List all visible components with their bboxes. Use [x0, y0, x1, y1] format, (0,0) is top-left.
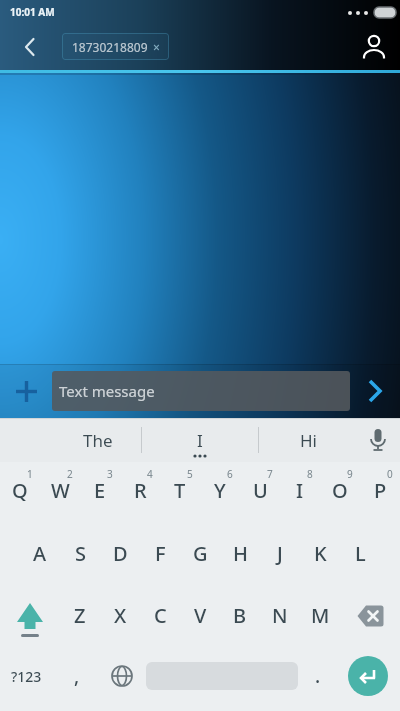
staticText: . [315, 663, 321, 689]
staticText: 5 [187, 467, 193, 481]
button[interactable] [354, 28, 392, 66]
button[interactable]: M [300, 587, 340, 649]
staticText: , [74, 663, 80, 689]
button[interactable]: 18730218809 [62, 33, 169, 60]
staticText: D [113, 540, 128, 567]
staticText: R [134, 477, 147, 504]
button[interactable]: B [220, 587, 260, 649]
staticText: T [174, 477, 186, 504]
staticText: H [233, 540, 248, 567]
staticText: S [75, 540, 86, 567]
button[interactable]: Y [200, 462, 240, 525]
staticText: Y [214, 477, 226, 504]
button[interactable]: I [280, 462, 320, 525]
button[interactable]: N [260, 587, 300, 649]
button[interactable]: D [100, 525, 140, 587]
staticText: 18730218809 [72, 39, 148, 55]
button[interactable]: X [100, 587, 140, 649]
staticText: I [197, 429, 203, 452]
button[interactable]: Hi [259, 418, 357, 462]
button[interactable]: L [340, 525, 380, 587]
button[interactable]: I [142, 418, 258, 462]
staticText: 9 [347, 467, 353, 481]
button[interactable]: , [52, 645, 102, 707]
staticText: K [314, 540, 327, 567]
button[interactable]: S [60, 525, 100, 587]
button[interactable] [0, 364, 52, 418]
button[interactable]: Q [0, 462, 40, 525]
button[interactable]: F [140, 525, 180, 587]
staticText: W [51, 477, 70, 504]
button[interactable]: G [180, 525, 220, 587]
staticText: N [272, 602, 288, 629]
staticText: 7 [267, 467, 273, 481]
staticText: Text message [59, 381, 155, 401]
staticText: 1 [27, 467, 33, 481]
staticText: J [277, 540, 283, 567]
button[interactable] [350, 364, 400, 418]
button[interactable]: E [80, 462, 120, 525]
button[interactable] [356, 418, 400, 462]
staticText: Hi [300, 429, 317, 452]
button[interactable]: Text message [52, 371, 350, 411]
button[interactable]: V [180, 587, 220, 649]
button[interactable]: J [260, 525, 300, 587]
staticText: U [253, 477, 268, 504]
staticText: X [114, 602, 127, 629]
staticText: M [311, 602, 330, 629]
staticText: E [94, 477, 106, 504]
staticText: V [194, 602, 207, 629]
staticText: B [233, 602, 247, 629]
staticText: Q [12, 477, 28, 504]
staticText: Z [74, 602, 86, 629]
button[interactable]: K [300, 525, 340, 587]
button[interactable]: The [48, 418, 148, 462]
button[interactable]: R [120, 462, 160, 525]
button[interactable]: C [140, 587, 180, 649]
button[interactable]: P [360, 462, 400, 525]
staticText: 8 [307, 467, 313, 481]
staticText: F [155, 540, 166, 567]
staticText: 6 [227, 467, 233, 481]
button[interactable]: Z [60, 587, 100, 649]
button[interactable]: . [300, 645, 336, 707]
staticText: L [355, 540, 366, 567]
button[interactable] [336, 645, 400, 707]
staticText: I [296, 477, 304, 504]
staticText: ?123 [11, 667, 42, 686]
staticText: P [374, 477, 387, 504]
staticText: 0 [387, 467, 393, 481]
button[interactable]: O [320, 462, 360, 525]
button[interactable]: A [20, 525, 60, 587]
staticText: A [33, 540, 47, 567]
button[interactable]: H [220, 525, 260, 587]
staticText: 4 [147, 467, 153, 481]
staticText: 2 [67, 467, 73, 481]
staticText: 10:01 AM [10, 5, 55, 19]
button[interactable]: ?123 [0, 645, 52, 707]
button[interactable] [0, 587, 60, 649]
staticText: The [83, 429, 113, 452]
button[interactable] [340, 587, 400, 649]
staticText: 3 [107, 467, 113, 481]
staticText: C [154, 602, 167, 629]
button[interactable]: W [40, 462, 80, 525]
button[interactable] [14, 30, 48, 64]
staticText: G [193, 540, 208, 567]
button[interactable] [102, 645, 142, 707]
staticText: O [332, 477, 348, 504]
staticText: × [153, 39, 160, 55]
button[interactable]: U [240, 462, 280, 525]
button[interactable]: T [160, 462, 200, 525]
